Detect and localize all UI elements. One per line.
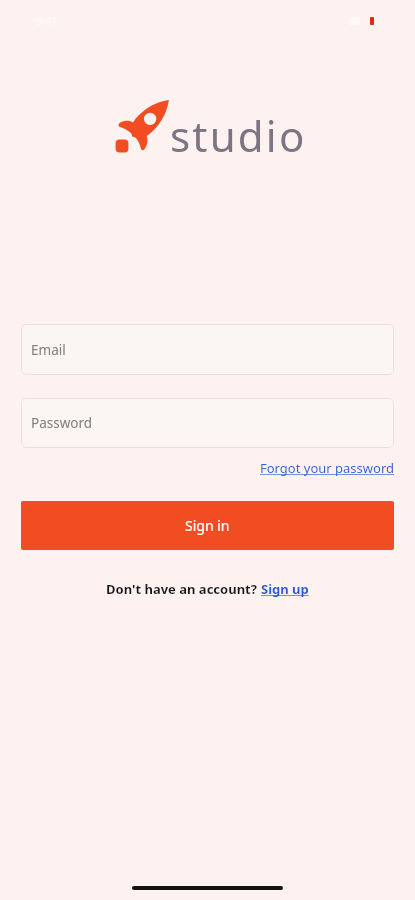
staticText: Email: [31, 341, 66, 359]
staticText: Sign up: [261, 580, 309, 598]
staticText: Don't have an account?: [106, 580, 261, 598]
button[interactable]: Sign up: [261, 580, 309, 598]
button[interactable]: Password: [21, 398, 394, 448]
button[interactable]: Forgot your password: [260, 459, 394, 477]
staticText: Sign in: [185, 516, 230, 535]
other: studio logo: [116, 100, 168, 152]
button[interactable]: Sign in: [21, 501, 394, 550]
staticText: Forgot your password: [260, 459, 394, 477]
button[interactable]: Email: [21, 324, 394, 375]
staticText: studio: [170, 107, 307, 164]
staticText: Password: [31, 414, 93, 432]
